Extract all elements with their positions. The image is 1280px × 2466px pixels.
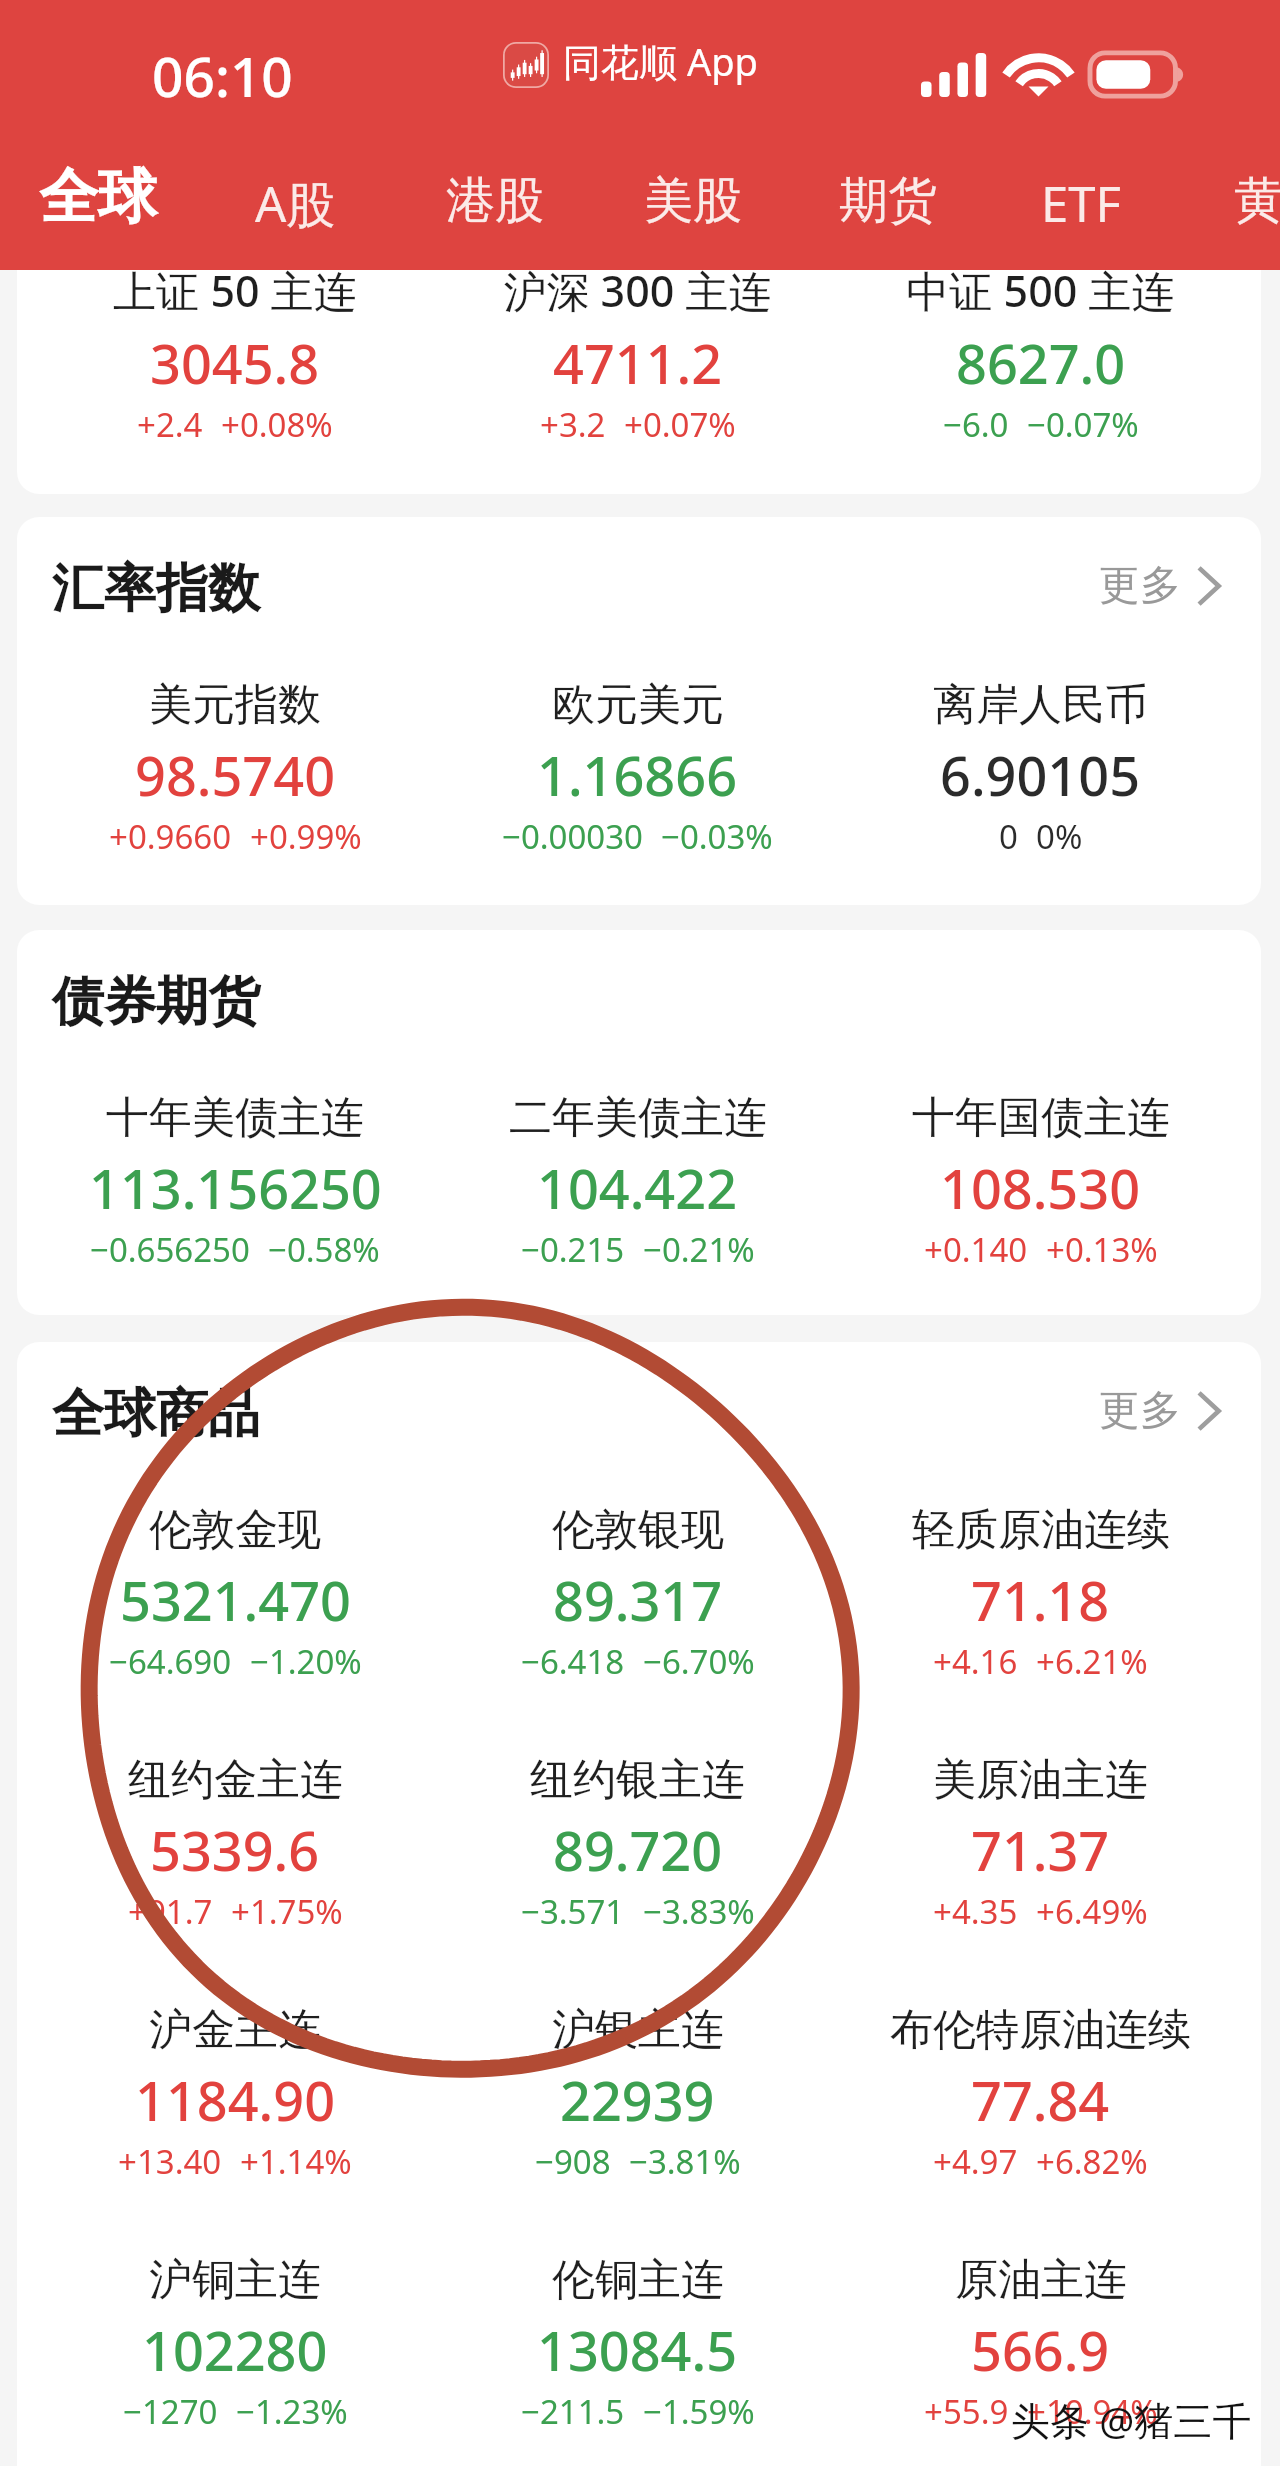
staticText: +10.94% [1027, 2389, 1158, 2434]
staticText: +0.08% [221, 402, 333, 447]
button[interactable]: 沪金主连 [34, 2003, 436, 2184]
staticText: 伦敦银现 [552, 1503, 724, 1557]
staticText: −3.83% [643, 1889, 755, 1934]
button[interactable]: 纽约银主连 [436, 1753, 839, 1934]
staticText: 汇率指数 [52, 556, 260, 622]
staticText: 102280 [142, 2313, 328, 2387]
staticText: 4711.2 [553, 326, 723, 400]
staticText: 纽约金主连 [128, 1753, 343, 1807]
staticText: −0.03% [661, 814, 773, 859]
staticText: −0.58% [268, 1227, 380, 1272]
staticText: −3.571 [521, 1889, 625, 1934]
button[interactable]: 美原油主连 [839, 1753, 1242, 1934]
button[interactable]: 轻质原油连续 [839, 1503, 1242, 1684]
button[interactable]: 中证 500 主连 [839, 270, 1242, 447]
staticText: 113.156250 [89, 1151, 382, 1225]
button[interactable]: 美元指数 [34, 678, 436, 859]
staticText: 1184.90 [135, 2063, 336, 2137]
other: Wi-Fi [1010, 51, 1067, 96]
button[interactable]: 二年美债主连 [436, 1091, 839, 1272]
button[interactable]: 纽约金主连 [34, 1753, 436, 1934]
button[interactable]: 沪深 300 主连 [436, 270, 839, 447]
staticText: −0.656250 [90, 1227, 250, 1272]
button[interactable]: 上证 50 主连 [34, 270, 436, 447]
staticText: 89.720 [553, 1813, 723, 1887]
staticText: +4.97 [933, 2139, 1018, 2184]
staticText: 上证 50 主连 [113, 270, 357, 320]
staticText: 98.5740 [135, 738, 336, 812]
staticText: +6.82% [1036, 2139, 1148, 2184]
staticText: −6.0 [943, 402, 1009, 447]
staticText: +1.75% [231, 1889, 343, 1934]
button[interactable]: 期货 [839, 170, 937, 232]
staticText: +1.14% [240, 2139, 352, 2184]
button[interactable]: 更多 [1099, 1385, 1261, 1437]
staticText: −0.07% [1027, 402, 1139, 447]
staticText: 8627.0 [956, 326, 1126, 400]
staticText: −6.418 [521, 1639, 625, 1684]
staticText: 5321.470 [120, 1563, 351, 1637]
staticText: 沪银主连 [552, 2003, 724, 2057]
button[interactable]: 伦敦银现 [436, 1503, 839, 1684]
staticText: 更多 [1099, 1385, 1181, 1437]
staticText: 沪金主连 [149, 2003, 321, 2057]
staticText: 债券期货 [52, 969, 260, 1035]
staticText: +55.9 [924, 2389, 1009, 2434]
button[interactable]: 全球 [39, 160, 157, 234]
staticText: 中证 500 主连 [906, 270, 1175, 320]
staticText: +2.4 [137, 402, 203, 447]
staticText: +0.99% [250, 814, 362, 859]
staticText: −1.59% [643, 2389, 755, 2434]
staticText: 06:10 [152, 38, 293, 113]
button[interactable]: 离岸人民币 [839, 678, 1242, 859]
staticText: 1.16866 [537, 738, 738, 812]
button[interactable]: 伦铜主连 [436, 2253, 839, 2434]
staticText: −0.21% [643, 1227, 755, 1272]
staticText: −1.23% [236, 2389, 348, 2434]
button[interactable]: A股 [255, 170, 336, 237]
staticText: 伦敦金现 [149, 1503, 321, 1557]
button[interactable]: 黄 [1234, 170, 1280, 232]
button[interactable]: 港股 [446, 170, 544, 232]
staticText: 十年国债主连 [912, 1091, 1170, 1145]
button[interactable]: 十年美债主连 [34, 1091, 436, 1272]
staticText: 108.530 [940, 1151, 1141, 1225]
staticText: −64.690 [109, 1639, 232, 1684]
button[interactable]: 更多 [1099, 560, 1261, 612]
staticText: 十年美债主连 [106, 1091, 364, 1145]
staticText: −6.70% [643, 1639, 755, 1684]
other: Cellular signal [921, 53, 989, 97]
staticText: 纽约银主连 [530, 1753, 745, 1807]
staticText: 更多 [1099, 560, 1181, 612]
button[interactable]: 沪银主连 [436, 2003, 839, 2184]
staticText: +4.16 [933, 1639, 1018, 1684]
staticText: 美元指数 [149, 678, 321, 732]
staticText: +13.40 [118, 2139, 222, 2184]
button[interactable]: 布伦特原油连续 [839, 2003, 1242, 2184]
other: Battery [1090, 51, 1185, 98]
staticText: 13084.5 [537, 2313, 738, 2387]
button[interactable]: 欧元美元 [436, 678, 839, 859]
button[interactable]: ETF [1041, 170, 1121, 237]
staticText: +3.2 [540, 402, 606, 447]
button[interactable]: 伦敦金现 [34, 1503, 436, 1684]
staticText: −1270 [123, 2389, 218, 2434]
button[interactable]: 原油主连 [839, 2253, 1242, 2434]
staticText: 沪深 300 主连 [503, 270, 772, 320]
staticText: −0.215 [521, 1227, 625, 1272]
button[interactable]: 沪铜主连 [34, 2253, 436, 2434]
staticText: 77.84 [971, 2063, 1110, 2137]
staticText: 0% [1036, 814, 1083, 859]
staticText: 原油主连 [955, 2253, 1127, 2307]
staticText: −211.5 [521, 2389, 625, 2434]
button[interactable]: 美股 [644, 170, 742, 232]
staticText: 104.422 [537, 1151, 738, 1225]
staticText: 布伦特原油连续 [890, 2003, 1191, 2057]
staticText: 二年美债主连 [509, 1091, 767, 1145]
staticText: −3.81% [629, 2139, 741, 2184]
staticText: 美原油主连 [933, 1753, 1148, 1807]
staticText: 离岸人民币 [933, 678, 1148, 732]
staticText: 71.18 [971, 1563, 1110, 1637]
staticText: +0.9660 [109, 814, 232, 859]
button[interactable]: 十年国债主连 [839, 1091, 1242, 1272]
